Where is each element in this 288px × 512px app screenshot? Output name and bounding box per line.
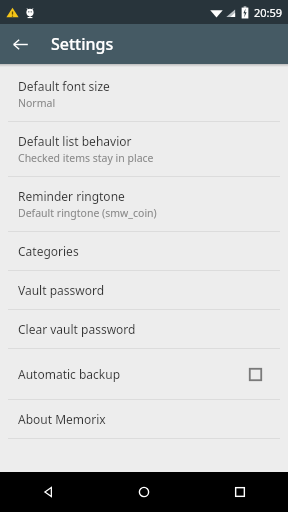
- button[interactable]: Default list behavior: [0, 122, 288, 176]
- staticText: About Memorix: [18, 411, 106, 427]
- button[interactable]: Default font size: [0, 67, 288, 121]
- button[interactable]: Automatic backup: [0, 349, 288, 399]
- staticText: Vault password: [18, 282, 105, 298]
- staticText: 20:59: [254, 5, 283, 20]
- button[interactable]: Navigate up: [0, 24, 40, 64]
- button[interactable]: Home: [96, 472, 192, 512]
- button[interactable]: Categories: [0, 232, 288, 270]
- button[interactable]: Back: [0, 472, 96, 512]
- button[interactable]: Recent apps: [192, 472, 288, 512]
- staticText: Checked items stay in place: [18, 151, 154, 165]
- staticText: Default list behavior: [18, 133, 132, 149]
- staticText: Default font size: [18, 78, 110, 94]
- staticText: Settings: [51, 33, 114, 55]
- button[interactable]: Reminder ringtone: [0, 177, 288, 231]
- staticText: Clear vault password: [18, 321, 136, 337]
- staticText: Categories: [18, 243, 79, 259]
- button[interactable]: Vault password: [0, 271, 288, 309]
- staticText: Default ringtone (smw_coin): [18, 206, 157, 220]
- button[interactable]: Clear vault password: [0, 310, 288, 348]
- staticText: Automatic backup: [18, 366, 249, 382]
- staticText: Normal: [18, 96, 56, 110]
- staticText: Reminder ringtone: [18, 188, 125, 204]
- button[interactable]: About Memorix: [0, 400, 288, 438]
